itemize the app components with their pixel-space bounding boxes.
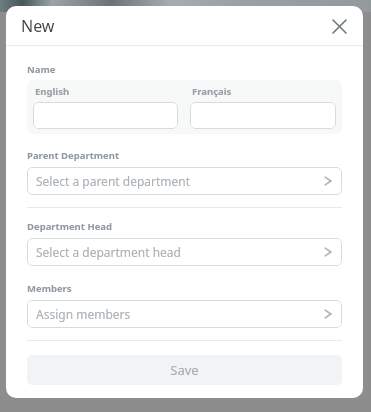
staticText: Department Head [27, 220, 113, 233]
staticText: New [21, 15, 55, 37]
button[interactable]: Close [323, 10, 355, 42]
staticText: Members [27, 282, 72, 295]
button[interactable]: Select a department head [27, 238, 342, 266]
button[interactable]: Français [190, 102, 336, 129]
staticText: Select a department head [36, 244, 181, 260]
button[interactable]: English [33, 102, 178, 129]
staticText: Name [27, 63, 56, 76]
button[interactable]: Save [27, 355, 342, 385]
staticText: Parent Department [27, 149, 120, 162]
staticText: Assign members [36, 306, 131, 322]
staticText: Save [170, 361, 199, 379]
button[interactable]: Assign members [27, 300, 342, 328]
staticText: Select a parent department [36, 173, 191, 189]
staticText: English [35, 85, 70, 98]
button[interactable]: Select a parent department [27, 167, 342, 195]
staticText: Français [192, 85, 232, 98]
